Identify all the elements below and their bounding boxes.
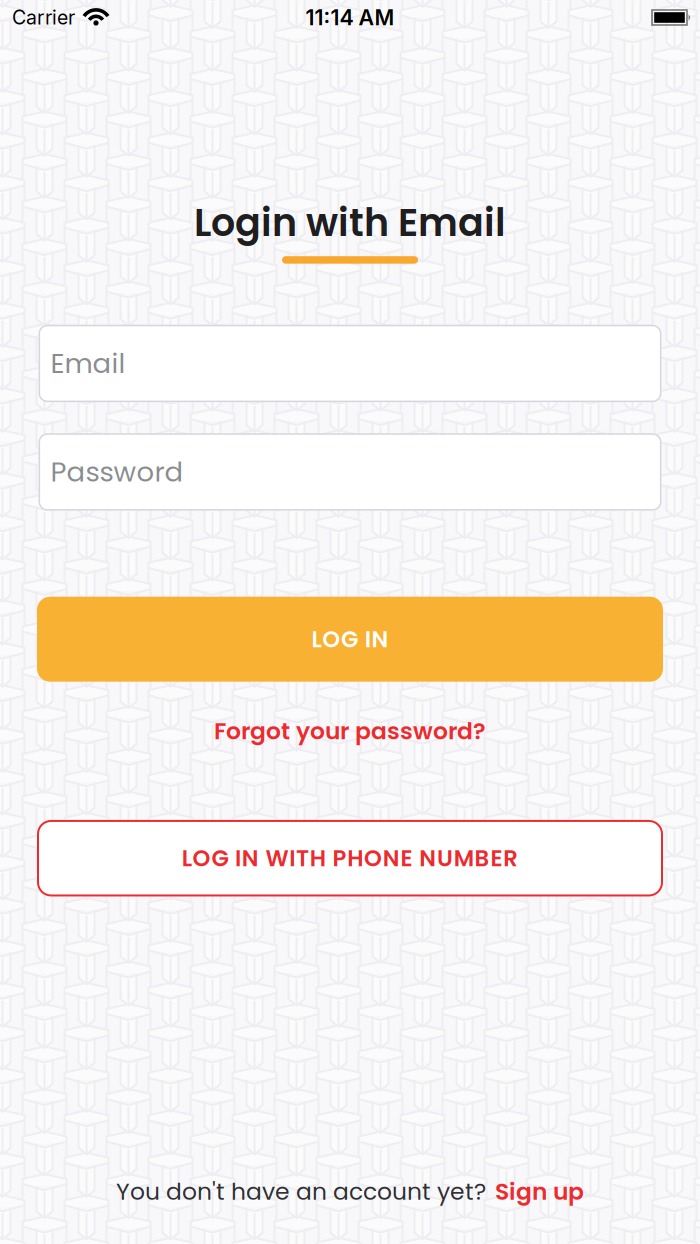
staticText: 11:14 AM [305,4,394,30]
staticText: LOG IN [311,623,388,655]
staticText: Email [50,344,125,383]
staticText: Password [50,453,183,491]
button[interactable]: LOG IN WITH PHONE NUMBER [37,820,663,896]
staticText: You don't have an account yet? [116,1175,486,1208]
staticText: Login with Email [194,196,506,249]
staticText: Carrier [12,6,75,29]
button[interactable]: Forgot your password? [214,715,486,747]
staticText: LOG IN WITH PHONE NUMBER [182,842,518,874]
button[interactable]: LOG IN [37,597,663,682]
button[interactable]: Sign up [495,1175,584,1208]
button[interactable]: Password [38,433,661,511]
staticText: Sign up [495,1175,584,1208]
staticText: Forgot your password? [214,715,486,747]
button[interactable]: Email [38,325,661,402]
